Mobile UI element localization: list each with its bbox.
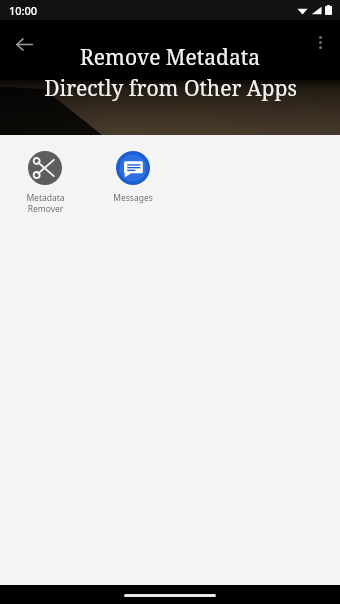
staticText: 10:00	[9, 3, 38, 18]
staticText: Directly from Other Apps	[44, 74, 297, 103]
other: Messages	[116, 151, 150, 185]
button[interactable]: More options	[304, 26, 336, 58]
other: Metadata Remover	[28, 151, 62, 185]
button[interactable]: Metadata Remover	[14, 147, 76, 218]
button[interactable]: Back	[6, 26, 42, 62]
staticText: Messages	[113, 192, 153, 204]
staticText: Remove Metadata	[80, 43, 260, 72]
button[interactable]: Messages	[102, 147, 164, 208]
staticText: Metadata Remover	[26, 192, 65, 214]
